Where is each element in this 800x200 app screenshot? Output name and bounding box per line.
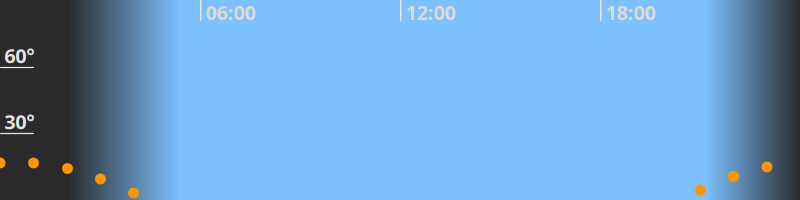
staticText: 12:00 (405, 0, 455, 26)
staticText: 60° (4, 42, 34, 69)
staticText: 18:00 (605, 0, 655, 26)
staticText: 30° (4, 108, 34, 135)
staticText: 06:00 (205, 0, 255, 26)
button[interactable]: Hourly temperature chart (0, 0, 800, 200)
